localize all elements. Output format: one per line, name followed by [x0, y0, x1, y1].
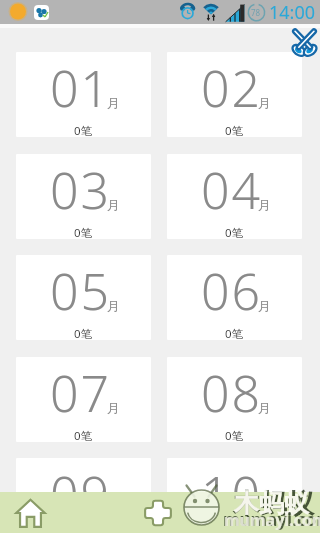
staticText: 06 [201, 257, 263, 325]
staticText: 0笔 [74, 123, 93, 137]
staticText: 03 [50, 156, 112, 224]
staticText: 01 [50, 54, 112, 122]
staticText: 10 [201, 460, 263, 528]
staticText: 月 [107, 197, 120, 213]
staticText: 月 [258, 95, 271, 111]
staticText: 0笔 [225, 428, 244, 442]
staticText: 0笔 [225, 123, 244, 137]
staticText: 78 [251, 7, 261, 18]
staticText: 04 [201, 156, 263, 224]
staticText: 0笔 [74, 428, 93, 442]
staticText: 07 [50, 359, 112, 427]
staticText: 09 [50, 460, 112, 528]
staticText: 木蚂蚁 [233, 487, 314, 521]
staticText: 0笔 [225, 326, 244, 340]
button[interactable]: 08 [167, 357, 302, 442]
staticText: 0笔 [74, 225, 93, 239]
staticText: 0笔 [74, 326, 93, 340]
button[interactable]: 05 [16, 255, 151, 340]
button[interactable]: 04 [167, 154, 302, 239]
staticText: 05 [50, 257, 112, 325]
staticText: mumayi.com [224, 509, 320, 531]
staticText: 月 [258, 298, 271, 314]
button[interactable]: 06 [167, 255, 302, 340]
staticText: 月 [107, 400, 120, 416]
button[interactable]: 09 [16, 458, 151, 533]
staticText: 木蚂蚁 [234, 488, 309, 519]
button[interactable]: Add [144, 500, 172, 526]
staticText: mumayi.com [223, 508, 320, 531]
staticText: 月 [107, 95, 120, 111]
button[interactable]: 01 [16, 52, 151, 137]
button[interactable]: 02 [167, 52, 302, 137]
staticText: 月 [107, 298, 120, 314]
staticText: 月 [258, 197, 271, 213]
staticText: 02 [201, 54, 263, 122]
button[interactable]: 03 [16, 154, 151, 239]
button[interactable]: 10 [167, 458, 302, 533]
staticText: 月 [258, 501, 271, 517]
staticText: 0笔 [225, 225, 244, 239]
staticText: 08 [201, 359, 263, 427]
staticText: 14:00 [269, 0, 316, 24]
button[interactable]: 07 [16, 357, 151, 442]
button[interactable]: Home [16, 498, 45, 528]
staticText: 月 [258, 400, 271, 416]
